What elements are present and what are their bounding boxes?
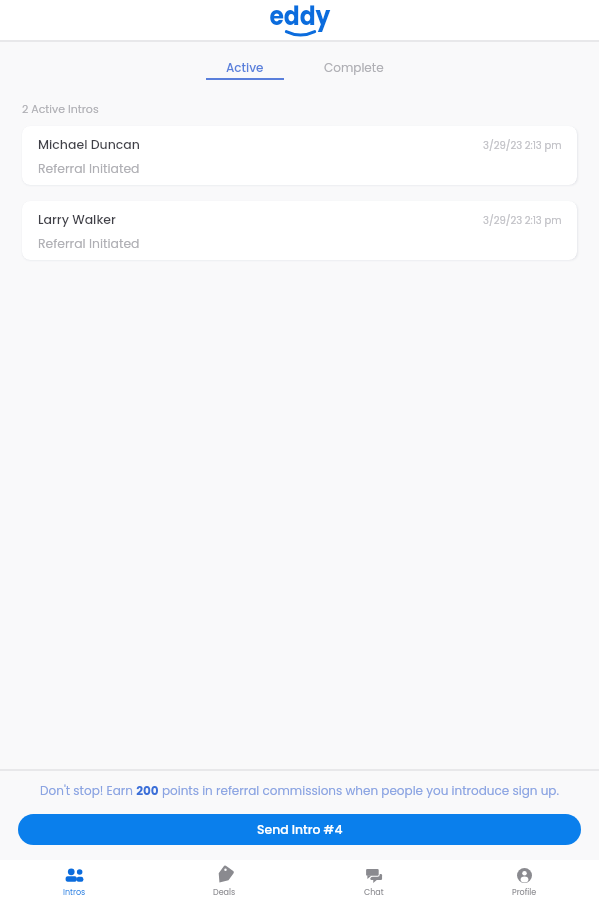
staticText: Michael Duncan: [38, 136, 140, 153]
staticText: Referral Initiated: [38, 160, 140, 177]
button[interactable]: Complete: [315, 42, 393, 82]
staticText: eddy: [269, 0, 331, 34]
staticText: Complete: [324, 59, 384, 76]
button[interactable]: Deals: [149, 860, 299, 900]
button[interactable]: Chat: [299, 860, 449, 900]
staticText: 3/29/23 2:13 pm: [483, 213, 562, 227]
staticText: Send Intro #4: [257, 821, 343, 838]
staticText: Active: [226, 59, 264, 76]
staticText: Profile: [512, 887, 537, 898]
button[interactable]: Send Intro #4: [18, 814, 581, 845]
staticText: Larry Walker: [38, 211, 116, 228]
staticText: 3/29/23 2:13 pm: [483, 138, 562, 152]
other: eddy: [255, 0, 345, 40]
staticText: 2 Active Intros: [22, 101, 99, 116]
staticText: Don't stop! Earn 200 points in referral …: [40, 782, 559, 799]
button[interactable]: Larry Walker: [22, 201, 577, 260]
staticText: Referral Initiated: [38, 235, 140, 252]
staticText: Intros: [63, 887, 86, 898]
staticText: Chat: [364, 887, 384, 898]
button[interactable]: Michael Duncan: [22, 126, 577, 185]
button[interactable]: Profile: [449, 860, 599, 900]
button[interactable]: Active: [206, 42, 284, 82]
button[interactable]: Intros: [0, 860, 149, 900]
staticText: Deals: [213, 887, 236, 898]
